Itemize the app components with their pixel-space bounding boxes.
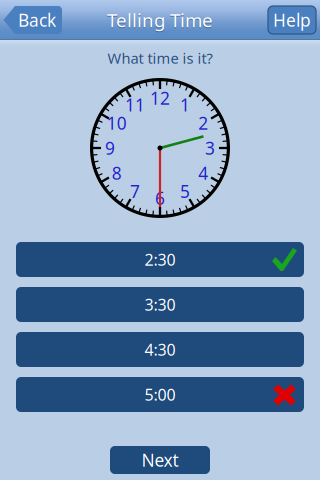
- staticText: Telling Time: [107, 8, 213, 32]
- staticText: Telling Time: [107, 9, 213, 33]
- staticText: 1: [180, 93, 190, 116]
- button[interactable]: Help: [268, 6, 316, 34]
- staticText: What time is it?: [107, 48, 212, 68]
- staticText: 3: [205, 136, 215, 159]
- button[interactable]: Next: [110, 446, 210, 474]
- staticText: 5: [180, 180, 190, 203]
- staticText: 2: [198, 111, 208, 134]
- button[interactable]: Back: [2, 5, 62, 35]
- staticText: 3:30: [144, 294, 175, 315]
- button[interactable]: 3:30: [16, 287, 304, 322]
- button[interactable]: 2:30: [16, 242, 304, 277]
- staticText: 4:30: [144, 339, 175, 360]
- staticText: Back: [18, 8, 56, 31]
- staticText: 2:30: [144, 249, 175, 270]
- button[interactable]: 4:30: [16, 332, 304, 367]
- staticText: 9: [105, 136, 115, 159]
- staticText: 8: [112, 161, 122, 184]
- staticText: Next: [141, 448, 178, 471]
- staticText: 11: [125, 93, 145, 116]
- staticText: 10: [107, 111, 127, 134]
- staticText: 12: [150, 86, 170, 109]
- staticText: 4: [198, 161, 208, 184]
- staticText: 5:00: [144, 384, 175, 405]
- staticText: 7: [130, 180, 140, 203]
- staticText: 6: [155, 186, 165, 209]
- staticText: Help: [273, 8, 311, 31]
- button[interactable]: 5:00: [16, 377, 304, 412]
